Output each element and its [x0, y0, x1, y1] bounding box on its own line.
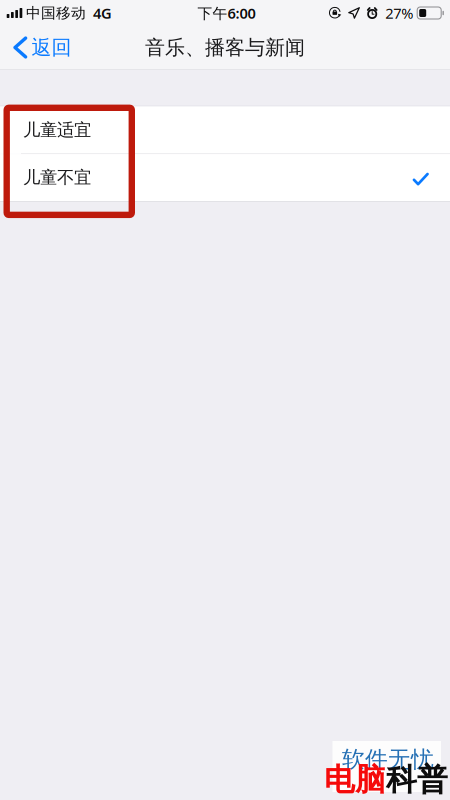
staticText: 软件无忧	[342, 745, 434, 773]
staticText: 音乐、播客与新闻	[145, 35, 305, 60]
button[interactable]: 儿童不宜	[0, 154, 450, 201]
button[interactable]: 返回	[0, 28, 82, 67]
staticText: 电脑	[324, 761, 386, 799]
staticText: 下午6:00	[197, 3, 255, 23]
staticText: 返回	[32, 35, 72, 60]
staticText: 儿童适宜	[23, 119, 91, 141]
button[interactable]: 儿童适宜	[0, 106, 450, 153]
staticText: 科普	[386, 761, 448, 799]
staticText: 27%	[385, 3, 413, 23]
staticText: 4G	[93, 3, 112, 23]
staticText: 中国移动	[26, 4, 86, 22]
staticText: 儿童不宜	[23, 167, 91, 188]
